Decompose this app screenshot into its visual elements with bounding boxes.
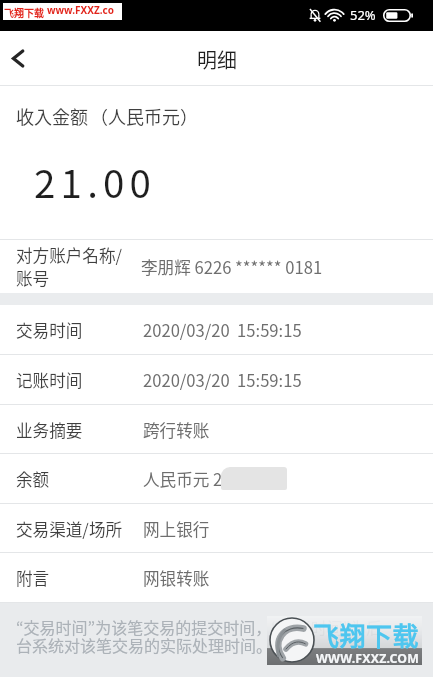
staticText: “交易时间”为该笔交易的提交时间，“记账时间”为后 台系统对该笔交易的实际处理时… [16,615,383,656]
button[interactable]: 余额 [0,454,433,504]
staticText: 52% [350,6,376,24]
staticText: 记账时间 [16,368,83,392]
staticText: 收入金额 [16,103,88,129]
button[interactable]: 对方账户名称/ 账号 [0,240,433,293]
button[interactable]: Back [0,31,46,86]
staticText: 人民币元 2 [143,467,223,491]
staticText: 业务摘要 [16,418,83,442]
staticText: 飞翔下载 [4,5,44,19]
staticText: WWW.FXXZ.COM [316,650,420,667]
staticText: 对方账户名称/ 账号 [16,243,123,290]
staticText: 李朋辉 6226 ****** 0181 [141,255,323,279]
staticText: 飞翔下载 [313,616,420,654]
staticText: 交易渠道/场所 [16,517,123,541]
staticText: 余额 [16,467,50,491]
staticText: 跨行转账 [143,418,210,442]
staticText: （人民币元） [90,103,198,129]
button[interactable]: 记账时间 [0,355,433,405]
staticText: 2020/03/20 15:59:15 [143,368,302,392]
button[interactable]: 附言 [0,553,433,603]
staticText: www.FXXZ.com [47,3,123,20]
staticText: 21.00 [34,153,157,209]
button[interactable]: 交易时间 [0,305,433,355]
button[interactable]: 交易渠道/场所 [0,504,433,553]
staticText: 网银转账 [143,566,210,590]
staticText: 交易时间 [16,318,83,342]
staticText: 附言 [16,566,50,590]
button[interactable]: 业务摘要 [0,405,433,454]
staticText: 2020/03/20 15:59:15 [143,318,302,342]
staticText: 明细 [197,45,237,74]
staticText: 网上银行 [143,517,210,541]
